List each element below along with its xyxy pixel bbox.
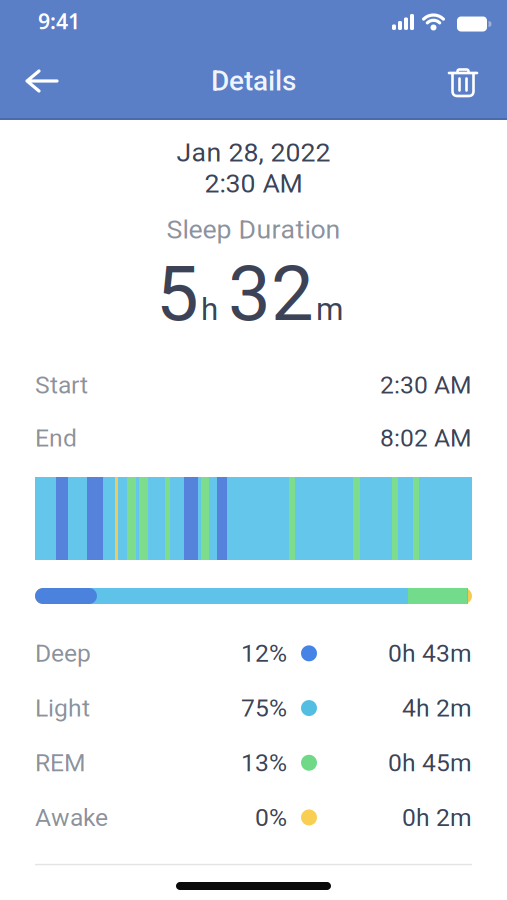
- staticText: 0h 45m: [388, 748, 472, 777]
- staticText: REM: [35, 748, 86, 777]
- staticText: 0h 2m: [402, 803, 472, 832]
- staticText: 2:30 AM: [380, 370, 472, 399]
- staticText: End: [35, 423, 77, 452]
- staticText: 2:30 AM: [204, 168, 302, 199]
- staticText: 32: [228, 249, 314, 339]
- staticText: 4h 2m: [402, 694, 472, 722]
- button[interactable]: [12, 51, 72, 111]
- staticText: m: [316, 291, 343, 328]
- staticText: 12%: [241, 639, 287, 668]
- staticText: Jan 28, 2022: [176, 137, 330, 168]
- staticText: Deep: [35, 639, 91, 668]
- staticText: 5: [156, 249, 199, 339]
- staticText: 9:41: [38, 7, 80, 35]
- staticText: 8:02 AM: [380, 423, 472, 452]
- staticText: 75%: [241, 694, 287, 722]
- staticText: 13%: [241, 748, 287, 777]
- button[interactable]: [433, 51, 493, 111]
- staticText: Light: [35, 694, 90, 722]
- staticText: h: [201, 291, 218, 328]
- staticText: Sleep Duration: [166, 214, 340, 245]
- staticText: Awake: [35, 803, 108, 832]
- staticText: Start: [35, 370, 88, 399]
- staticText: 0h 43m: [388, 639, 472, 668]
- staticText: Details: [211, 65, 296, 97]
- staticText: 0%: [255, 803, 287, 832]
